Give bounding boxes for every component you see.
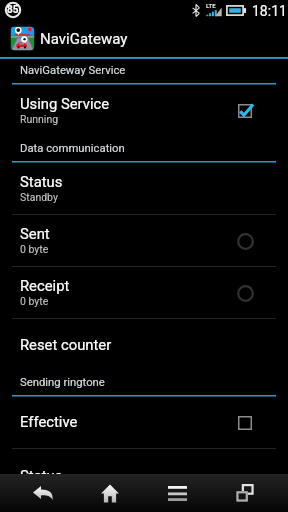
staticText: Data communication — [20, 142, 288, 155]
button[interactable]: Status — [0, 449, 288, 474]
staticText: 18:11 — [252, 3, 287, 19]
button[interactable]: Home — [76, 474, 143, 512]
button[interactable]: Status — [0, 163, 288, 214]
staticText: NaviGateway — [40, 30, 128, 48]
staticText: Status — [20, 467, 63, 474]
staticText: Reset counter — [20, 336, 112, 353]
staticText: LTE — [206, 2, 216, 9]
staticText: NaviGateway Service — [20, 64, 288, 77]
staticText: Standby — [20, 191, 58, 203]
button[interactable]: Reset counter — [0, 319, 288, 371]
staticText: Sent — [20, 225, 50, 242]
staticText: Status — [20, 173, 63, 190]
button[interactable]: Recent apps — [211, 474, 279, 512]
button[interactable]: Sent — [0, 215, 288, 266]
staticText: 0 byte — [20, 295, 49, 307]
button[interactable]: Using Service — [0, 85, 288, 137]
button[interactable]: Receipt — [0, 267, 288, 318]
staticText: Effective — [20, 413, 78, 430]
button[interactable]: Menu — [143, 474, 211, 512]
staticText: 85 — [7, 4, 19, 16]
staticText: Sending ringtone — [20, 376, 288, 389]
staticText: Using Service — [20, 95, 110, 112]
staticText: Running — [20, 113, 59, 125]
staticText: 0 byte — [20, 243, 49, 255]
button[interactable]: Effective — [0, 397, 288, 448]
staticText: Receipt — [20, 277, 70, 294]
button[interactable]: Back — [9, 474, 76, 512]
